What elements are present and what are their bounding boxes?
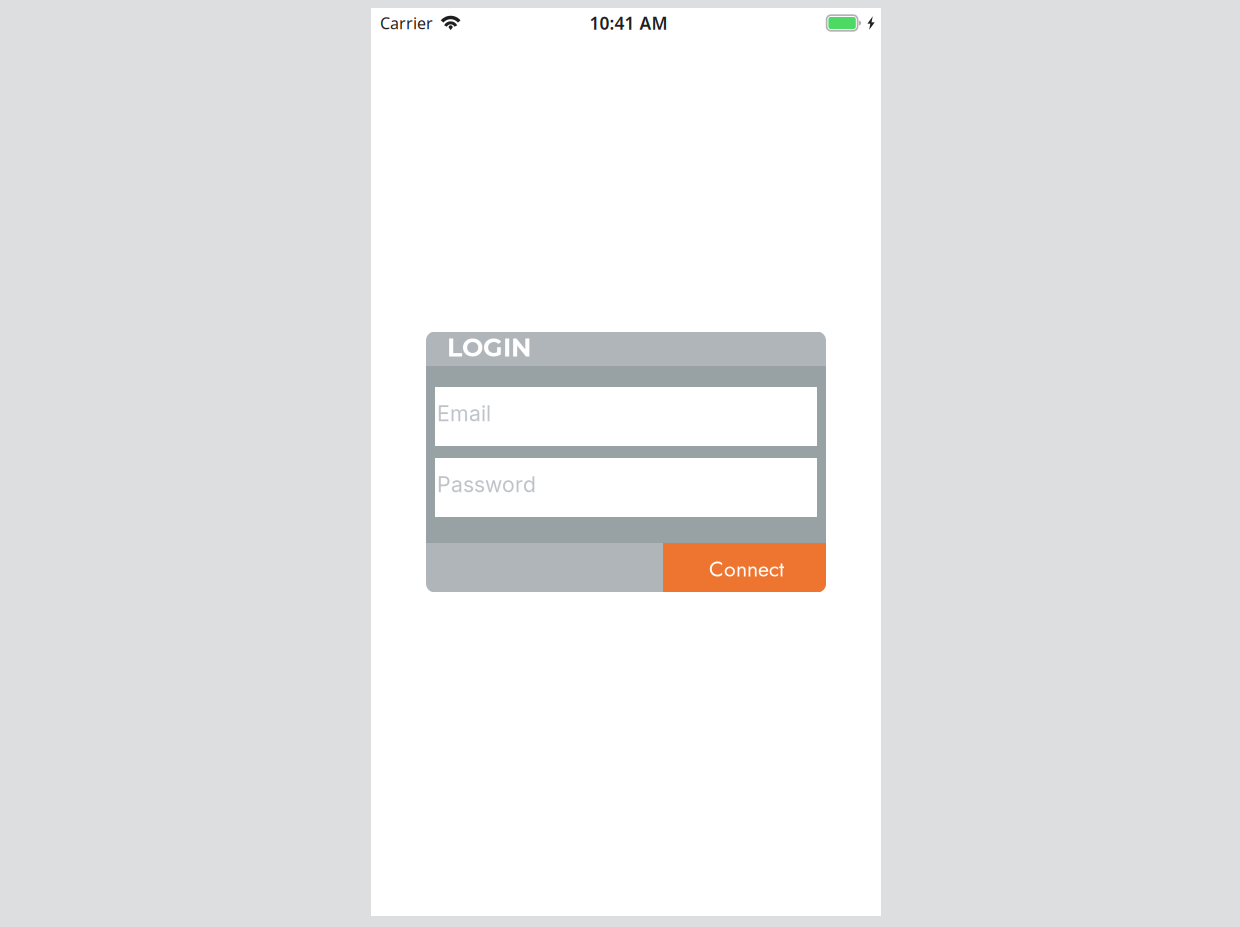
staticText: 10:41 AM [589, 11, 667, 34]
staticText: Connect [709, 554, 784, 584]
staticText: Password [437, 472, 536, 497]
button[interactable]: Connect [663, 543, 826, 592]
staticText: Carrier [380, 12, 433, 34]
staticText: LOGIN [447, 332, 531, 363]
staticText: Email [437, 401, 491, 426]
